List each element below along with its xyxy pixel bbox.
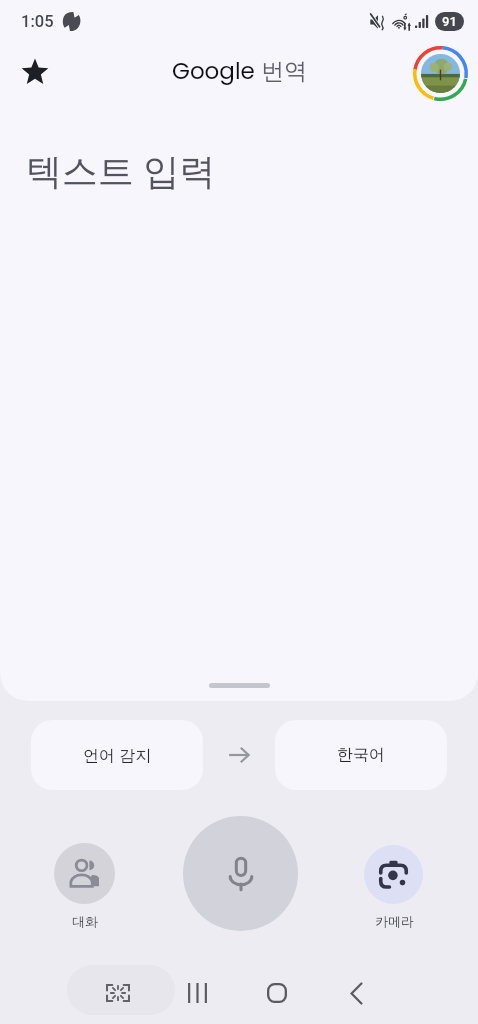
button[interactable]: Recent apps xyxy=(175,971,219,1015)
button[interactable]: Home xyxy=(255,971,299,1015)
button[interactable]: Camera xyxy=(364,845,423,904)
button[interactable]: Microphone xyxy=(183,816,298,931)
staticText: 카메라 xyxy=(375,913,414,929)
staticText: 대화 xyxy=(72,913,98,929)
staticText: 언어 감지 xyxy=(83,744,152,766)
staticText: 한국어 xyxy=(337,745,385,765)
staticText: 텍스트 입력 xyxy=(26,146,216,195)
staticText: Google 번역 xyxy=(172,55,307,87)
button[interactable]: 한국어 xyxy=(275,720,447,790)
staticText: 91 xyxy=(442,14,457,29)
staticText: 1:05 xyxy=(21,12,54,31)
button[interactable]: Hide keyboard xyxy=(67,965,175,1015)
button[interactable]: Conversation xyxy=(54,843,115,904)
button[interactable]: Back xyxy=(334,971,378,1015)
button[interactable]: 언어 감지 xyxy=(31,720,203,790)
button[interactable]: Saved translations xyxy=(11,48,59,96)
button[interactable]: Account xyxy=(413,46,469,102)
